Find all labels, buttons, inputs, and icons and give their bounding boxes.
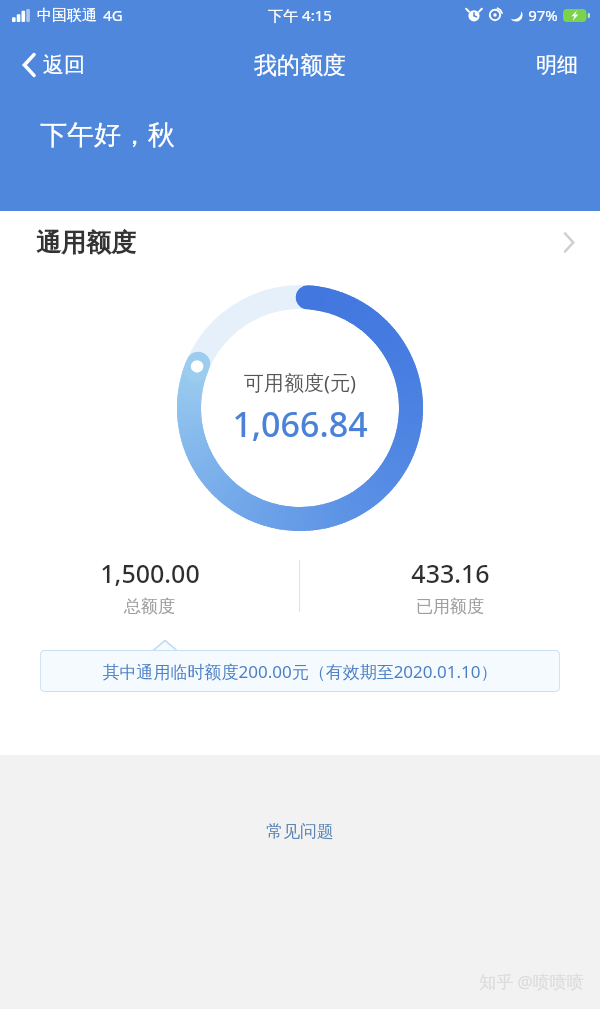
staticText: 中国联通 [37, 6, 97, 25]
staticText: 其中通用临时额度200.00元（有效期至2020.01.10） [102, 660, 498, 683]
staticText: 常见问题 [266, 821, 334, 842]
button[interactable]: 明细 [530, 46, 584, 84]
staticText: 4G [103, 5, 123, 25]
staticText: 可用额度(元) [244, 369, 356, 396]
staticText: 下午 4:15 [268, 5, 332, 25]
button[interactable]: 常见问题 [0, 821, 600, 842]
staticText: 通用额度 [36, 227, 136, 258]
staticText: 1,066.84 [232, 401, 368, 447]
staticText: 已用额度 [416, 596, 484, 617]
button[interactable]: 通用额度 [0, 211, 600, 273]
staticText: 我的额度 [254, 51, 346, 80]
staticText: 返回 [43, 52, 85, 78]
button[interactable]: 其中通用临时额度200.00元（有效期至2020.01.10） [40, 650, 560, 692]
button[interactable]: 返回 [14, 46, 93, 84]
staticText: 总额度 [124, 596, 175, 617]
staticText: 97% [528, 5, 558, 25]
staticText: 知乎 @喷喷喷 [479, 970, 584, 993]
staticText: 433.16 [411, 556, 490, 590]
other: 查看通用额度详情 [562, 230, 576, 255]
staticText: 下午好，秋 [40, 118, 175, 152]
staticText: 明细 [536, 52, 578, 78]
staticText: 1,500.00 [100, 556, 200, 590]
